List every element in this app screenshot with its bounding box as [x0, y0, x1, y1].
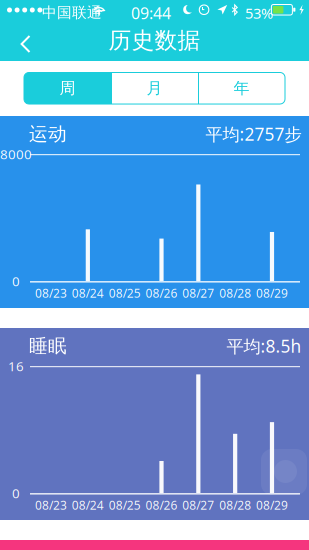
- button[interactable]: 年: [198, 72, 285, 104]
- staticText: 09:44: [131, 2, 171, 24]
- staticText: 08/24: [72, 285, 104, 301]
- staticText: 08/27: [182, 285, 214, 301]
- staticText: 08/26: [145, 497, 177, 513]
- staticText: 睡眠: [29, 334, 67, 357]
- staticText: 08/26: [145, 285, 177, 301]
- staticText: 周: [59, 78, 75, 98]
- staticText: 平均:8.5h: [226, 334, 301, 357]
- staticText: 历史数据: [108, 27, 200, 54]
- staticText: 08/28: [219, 497, 251, 513]
- staticText: 08/27: [182, 497, 214, 513]
- staticText: 月: [146, 78, 162, 98]
- staticText: 08/29: [256, 497, 288, 513]
- staticText: 08/25: [109, 497, 141, 513]
- staticText: 平均:2757步: [205, 122, 301, 145]
- staticText: 8000: [0, 145, 32, 163]
- staticText: 08/23: [35, 285, 67, 301]
- staticText: 运动: [29, 122, 67, 145]
- staticText: 08/29: [256, 285, 288, 301]
- staticText: 中国联通: [42, 3, 102, 21]
- button[interactable]: Back: [10, 22, 41, 66]
- staticText: 08/25: [109, 285, 141, 301]
- staticText: 08/24: [72, 497, 104, 513]
- staticText: 08/23: [35, 497, 67, 513]
- staticText: 08/28: [219, 285, 251, 301]
- button[interactable]: 月: [111, 72, 198, 104]
- staticText: 0: [12, 484, 20, 502]
- staticText: 0: [12, 272, 20, 290]
- staticText: 年: [233, 78, 249, 98]
- button[interactable]: 周: [24, 72, 111, 104]
- staticText: 16: [8, 357, 24, 375]
- staticText: 53%: [245, 3, 273, 23]
